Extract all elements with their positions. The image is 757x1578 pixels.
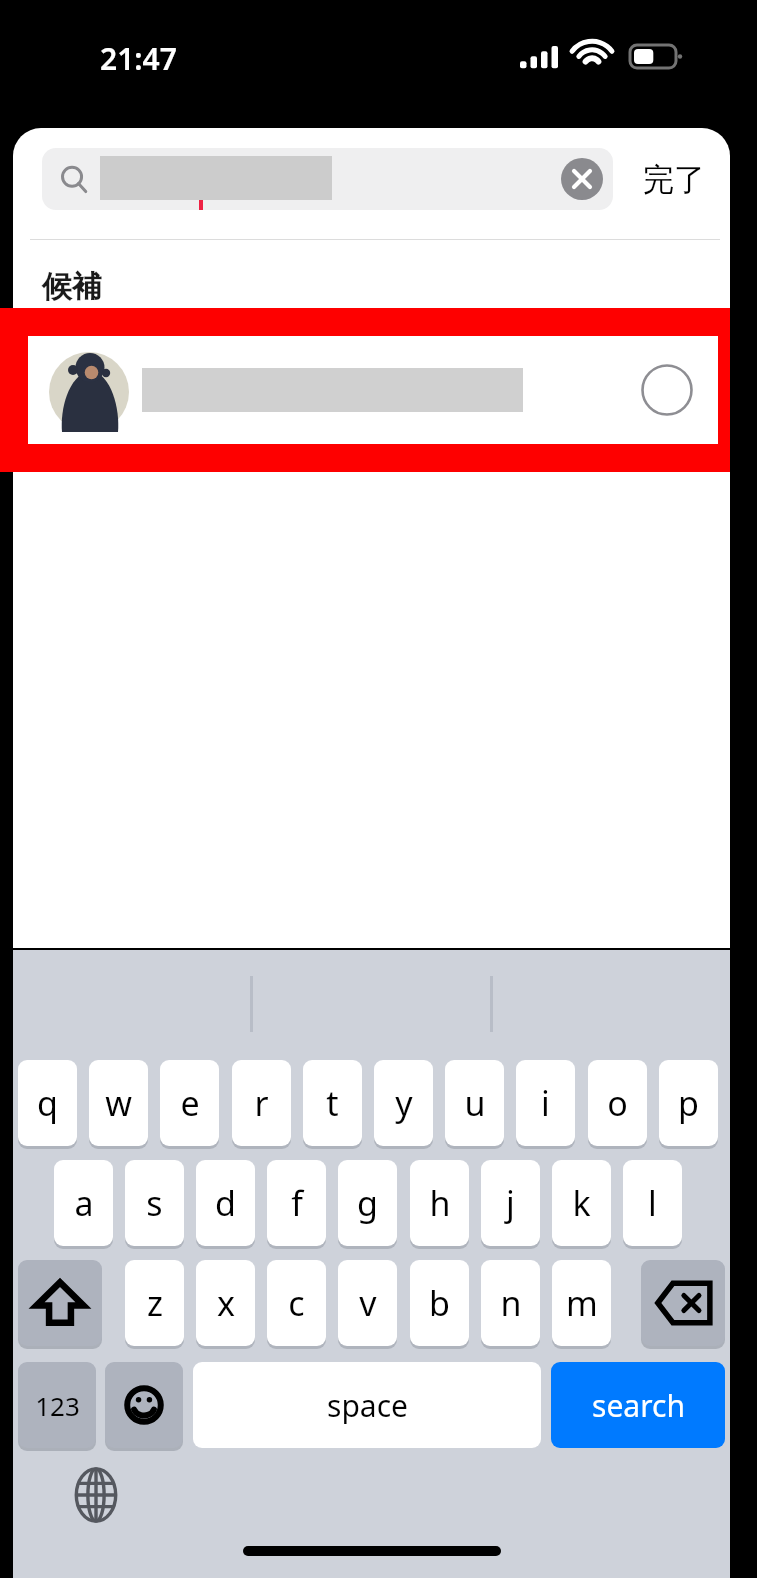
button[interactable]: h — [410, 1160, 469, 1246]
button[interactable]: Delete — [641, 1260, 725, 1346]
button[interactable]: o — [588, 1060, 647, 1146]
staticText: e — [180, 1080, 200, 1126]
button[interactable]: space — [193, 1362, 541, 1448]
button[interactable]: x — [196, 1260, 255, 1346]
staticText: p — [678, 1080, 699, 1126]
button[interactable]: Emoji — [105, 1362, 183, 1448]
staticText: 完了 — [643, 160, 705, 199]
button[interactable]: j — [481, 1160, 540, 1246]
button[interactable]: c — [267, 1260, 326, 1346]
button[interactable]: r — [232, 1060, 291, 1146]
button[interactable]: t — [303, 1060, 362, 1146]
staticText: h — [429, 1180, 451, 1226]
staticText: search — [592, 1385, 685, 1426]
button[interactable]: i — [516, 1060, 575, 1146]
button[interactable]: Select — [640, 363, 694, 417]
button[interactable]: q — [18, 1060, 77, 1146]
button[interactable]: v — [338, 1260, 397, 1346]
staticText: z — [147, 1280, 163, 1326]
button[interactable]: d — [196, 1160, 255, 1246]
staticText: k — [572, 1180, 591, 1226]
button[interactable]: s — [125, 1160, 184, 1246]
button[interactable]: Clear text — [561, 158, 603, 200]
button[interactable]: Clear text — [42, 148, 613, 210]
staticText: i — [541, 1080, 550, 1126]
staticText: v — [359, 1280, 377, 1326]
button[interactable]: m — [552, 1260, 611, 1346]
button[interactable]: g — [338, 1160, 397, 1246]
staticText: n — [500, 1280, 522, 1326]
button[interactable]: u — [445, 1060, 504, 1146]
button[interactable]: z — [125, 1260, 184, 1346]
staticText: r — [254, 1080, 269, 1126]
staticText: o — [607, 1080, 628, 1126]
staticText: f — [291, 1180, 303, 1226]
staticText: m — [566, 1280, 598, 1326]
button[interactable]: 完了 — [632, 152, 716, 206]
button[interactable]: 123 — [18, 1362, 96, 1448]
staticText: c — [288, 1280, 305, 1326]
staticText: s — [146, 1180, 163, 1226]
button[interactable]: Change keyboard — [63, 1462, 129, 1528]
staticText: 21:47 — [100, 38, 177, 79]
button[interactable]: search — [551, 1362, 725, 1448]
button[interactable]: w — [89, 1060, 148, 1146]
staticText: 123 — [35, 1388, 80, 1423]
button[interactable]: f — [267, 1160, 326, 1246]
button[interactable]: a — [54, 1160, 113, 1246]
button[interactable]: p — [659, 1060, 718, 1146]
staticText: x — [217, 1280, 235, 1326]
button[interactable]: e — [160, 1060, 219, 1146]
button[interactable]: b — [410, 1260, 469, 1346]
staticText: j — [506, 1180, 515, 1226]
button[interactable]: n — [481, 1260, 540, 1346]
staticText: 候補 — [42, 268, 102, 306]
button[interactable]: Select — [28, 336, 718, 444]
button[interactable]: Shift — [18, 1260, 102, 1346]
button[interactable]: l — [623, 1160, 682, 1246]
staticText: q — [37, 1080, 58, 1126]
staticText: a — [74, 1180, 94, 1226]
staticText: b — [429, 1280, 450, 1326]
staticText: d — [215, 1180, 236, 1226]
staticText: space — [327, 1385, 408, 1426]
staticText: l — [648, 1180, 657, 1226]
staticText: w — [105, 1080, 132, 1126]
button[interactable]: k — [552, 1160, 611, 1246]
staticText: g — [357, 1180, 378, 1226]
staticText: t — [326, 1080, 339, 1126]
staticText: y — [395, 1080, 413, 1126]
staticText: u — [464, 1080, 486, 1126]
button[interactable]: y — [374, 1060, 433, 1146]
